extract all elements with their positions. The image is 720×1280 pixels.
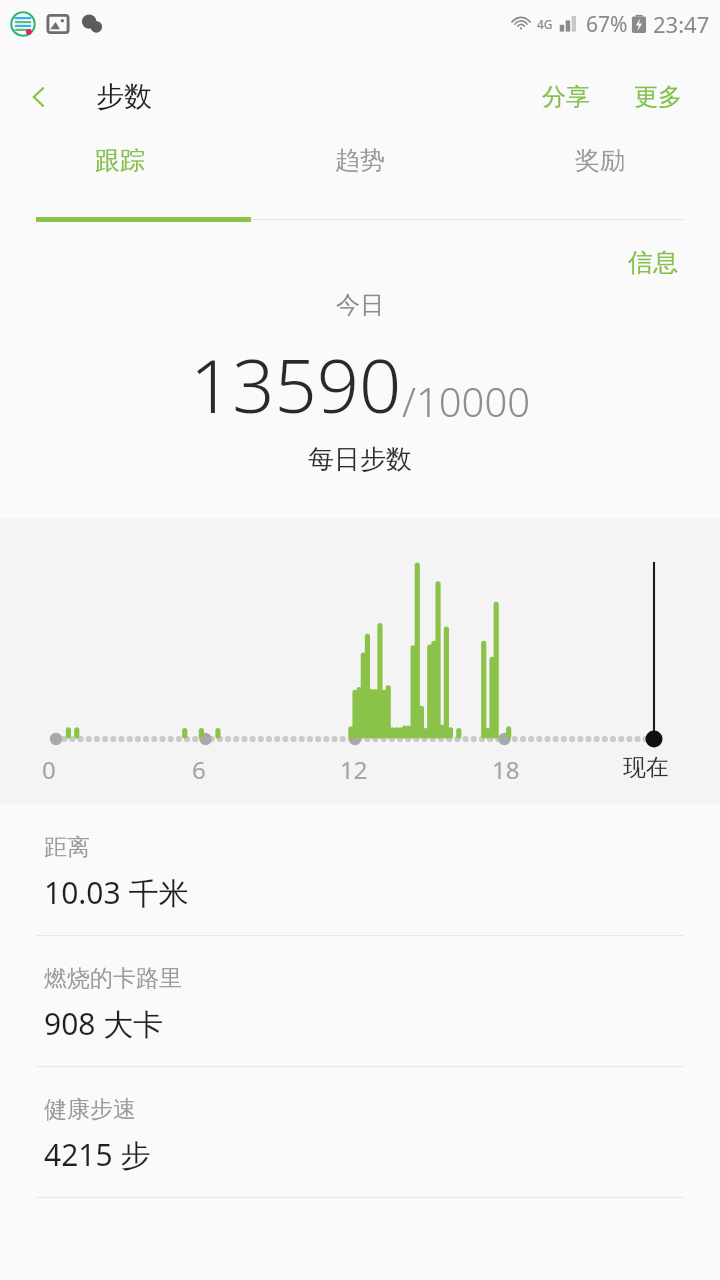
staticText: 4G (537, 16, 553, 32)
button[interactable]: 分享 (534, 72, 598, 122)
staticText: 13590 (190, 334, 402, 435)
staticText: 跟踪 (95, 145, 145, 176)
staticText: /10000 (402, 374, 531, 428)
staticText: 信息 (628, 247, 678, 278)
staticText: 更多 (634, 82, 682, 112)
staticText: 分享 (542, 82, 590, 112)
button[interactable]: Back (18, 76, 60, 118)
staticText: 908 大卡 (44, 1003, 164, 1044)
staticText: 23:47 (653, 9, 710, 39)
staticText: 0 (42, 753, 56, 786)
staticText: 现在 (623, 753, 669, 782)
button[interactable]: 跟踪 (0, 145, 240, 176)
staticText: 12 (340, 753, 368, 786)
staticText: 每日步数 (308, 443, 412, 476)
staticText: 今日 (336, 290, 384, 320)
staticText: 健康步速 (44, 1095, 136, 1124)
staticText: 67% (586, 10, 628, 39)
button[interactable]: 信息 (622, 243, 684, 282)
staticText: 4215 步 (44, 1134, 151, 1175)
staticText: 步数 (96, 79, 152, 114)
button[interactable]: 燃烧的卡路里 (0, 936, 720, 1066)
staticText: 趋势 (335, 145, 385, 176)
staticText: 10.03 千米 (44, 872, 189, 913)
staticText: 距离 (44, 833, 90, 862)
staticText: 6 (192, 753, 206, 786)
staticText: 奖励 (575, 145, 625, 176)
button[interactable]: 奖励 (480, 145, 720, 176)
button[interactable]: 更多 (626, 72, 690, 122)
staticText: 燃烧的卡路里 (44, 964, 182, 993)
button[interactable]: 距离 (0, 805, 720, 935)
staticText: 18 (492, 753, 520, 786)
button[interactable]: 健康步速 (0, 1067, 720, 1197)
button[interactable]: 趋势 (240, 145, 480, 176)
